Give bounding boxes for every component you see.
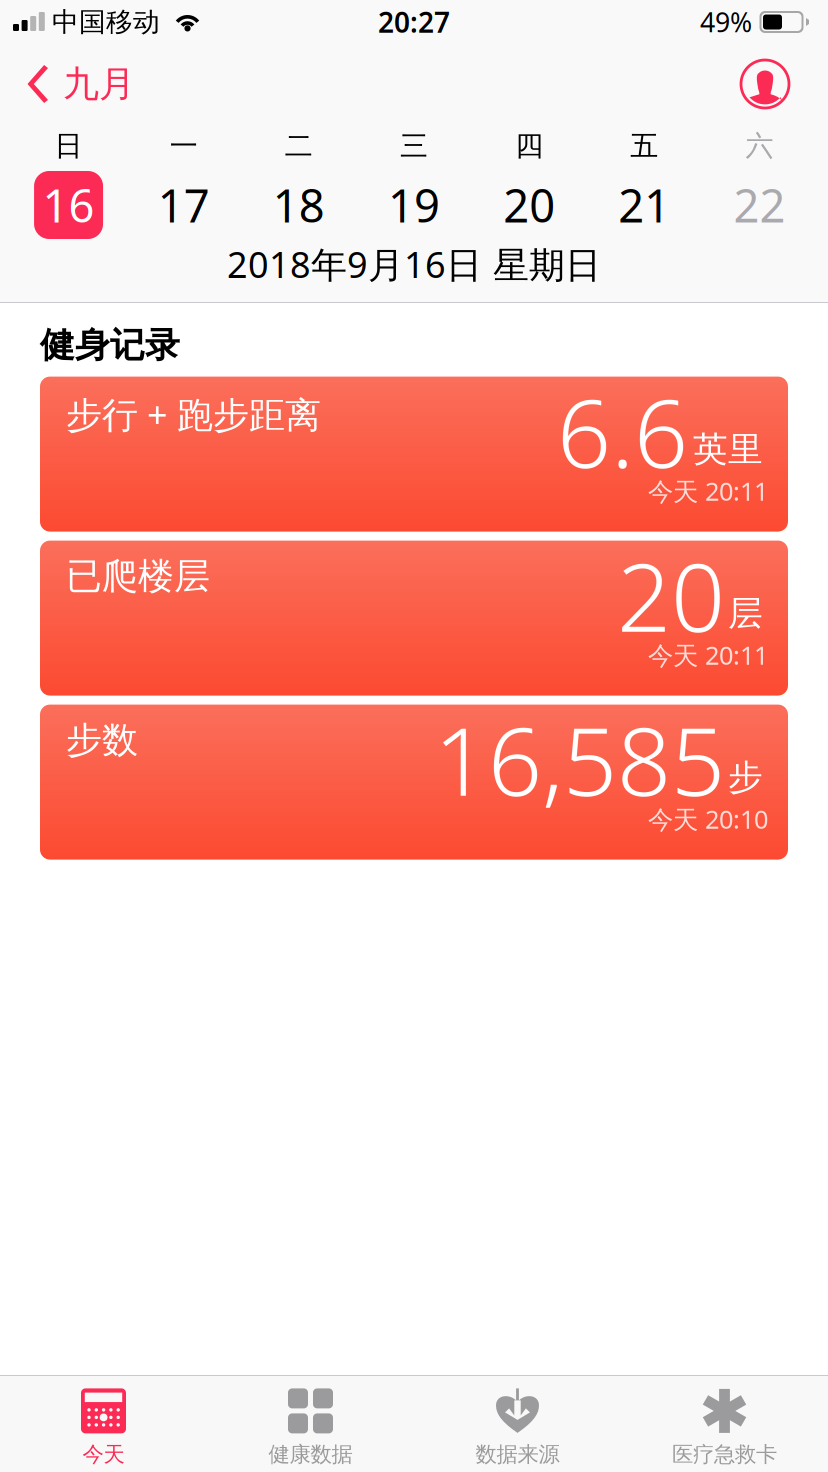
staticText: 22 <box>733 175 785 235</box>
button[interactable]: 20 <box>472 169 587 241</box>
staticText: 步 <box>728 756 763 799</box>
staticText: 20:27 <box>378 3 450 41</box>
staticText: 21 <box>618 175 670 235</box>
staticText: 英里 <box>693 428 763 471</box>
staticText: 九月 <box>63 62 135 106</box>
staticText: 16,585 <box>434 696 725 822</box>
button[interactable]: 18 <box>241 169 356 241</box>
button[interactable]: 16 <box>11 169 126 241</box>
button[interactable]: 个人资料 <box>718 53 828 115</box>
staticText: 健身记录 <box>40 324 180 367</box>
button[interactable]: 21 <box>587 169 702 241</box>
staticText: 医疗急救卡 <box>672 1441 777 1468</box>
staticText: 今天 20:10 <box>648 802 768 836</box>
staticText: 步数 <box>66 718 138 762</box>
staticText: 步行 + 跑步距离 <box>66 390 321 438</box>
staticText: 49% <box>700 4 752 40</box>
staticText: 三 <box>400 129 428 163</box>
staticText: 18 <box>273 175 325 235</box>
staticText: 19 <box>388 175 440 235</box>
staticText: 6.6 <box>557 368 688 494</box>
staticText: 五 <box>630 129 658 163</box>
button[interactable]: 医疗急救卡 <box>621 1374 828 1472</box>
staticText: 日 <box>55 129 83 163</box>
button[interactable]: 步数 <box>40 705 788 860</box>
staticText: 健康数据 <box>268 1441 352 1468</box>
staticText: 层 <box>728 592 763 635</box>
staticText: 今天 20:11 <box>648 474 768 508</box>
staticText: 今天 <box>82 1441 124 1468</box>
button[interactable]: 数据来源 <box>414 1374 621 1472</box>
staticText: 今天 20:11 <box>648 638 768 672</box>
button[interactable]: 九月 <box>0 53 149 115</box>
button[interactable]: 17 <box>126 169 241 241</box>
staticText: 20 <box>617 532 725 658</box>
staticText: 20 <box>503 175 555 235</box>
staticText: 16 <box>43 175 95 235</box>
staticText: 中国移动 <box>52 6 160 38</box>
staticText: 17 <box>158 175 210 235</box>
staticText: 一 <box>170 129 198 163</box>
button[interactable]: 健康数据 <box>207 1374 414 1472</box>
button[interactable]: 22 <box>702 169 817 241</box>
staticText: 四 <box>515 129 543 163</box>
button[interactable]: 步行 + 跑步距离 <box>40 377 788 532</box>
staticText: 二 <box>285 129 313 163</box>
button[interactable]: 19 <box>356 169 471 241</box>
staticText: 数据来源 <box>475 1441 559 1468</box>
button[interactable]: 今天 <box>0 1374 207 1472</box>
staticText: 已爬楼层 <box>66 554 210 598</box>
button[interactable]: 已爬楼层 <box>40 541 788 696</box>
staticText: 2018年9月16日 星期日 <box>227 240 601 288</box>
staticText: 六 <box>745 129 773 163</box>
